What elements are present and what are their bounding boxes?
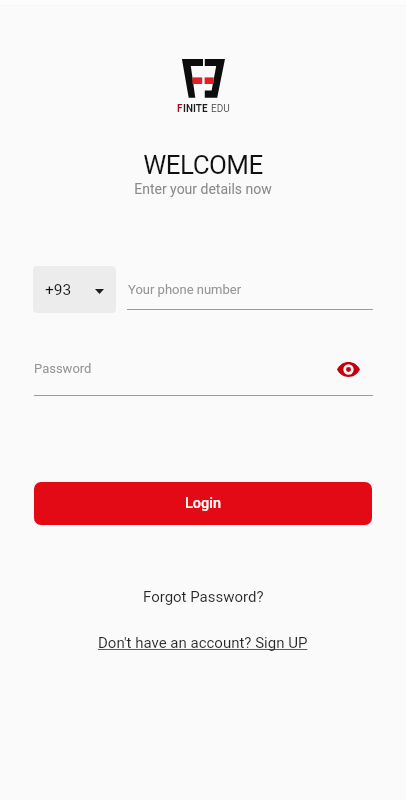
staticText: Enter your details now — [0, 181, 406, 197]
staticText: INITE — [183, 103, 208, 115]
button[interactable]: Password — [34, 351, 373, 394]
staticText: WELCOME — [0, 150, 406, 180]
staticText: F — [177, 103, 183, 115]
button[interactable]: Login — [34, 482, 372, 525]
staticText: Password — [34, 361, 92, 376]
button[interactable]: +93 — [33, 266, 116, 313]
staticText: Login — [185, 495, 222, 512]
staticText: Forgot Password? — [143, 588, 264, 606]
button[interactable]: Forgot Password? — [133, 585, 274, 609]
staticText: Don't have an account? Sign UP — [98, 634, 308, 652]
staticText: +93 — [45, 281, 72, 299]
button[interactable]: Your phone number — [127, 266, 373, 310]
button[interactable]: Show password — [326, 355, 370, 384]
button[interactable]: Don't have an account? Sign UP — [88, 631, 318, 655]
staticText: EDU — [211, 103, 230, 115]
staticText: Your phone number — [128, 282, 242, 297]
